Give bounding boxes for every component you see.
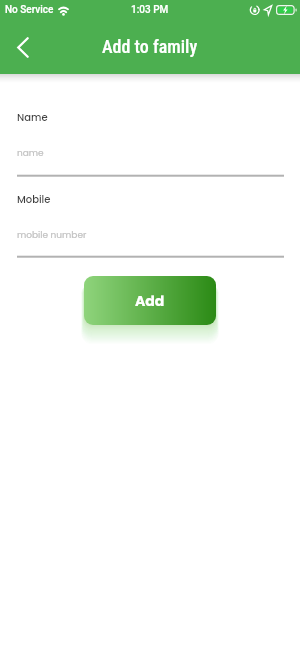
button[interactable]: Add (84, 276, 216, 325)
staticText: Add (135, 291, 165, 311)
staticText: 1:03 PM (131, 4, 169, 16)
button[interactable]: Back (5, 29, 41, 65)
staticText: mobile number (17, 229, 87, 242)
staticText: Name (17, 110, 48, 124)
staticText: Add to family (102, 36, 198, 57)
staticText: name (17, 147, 44, 160)
staticText: Mobile (17, 192, 51, 206)
staticText: No Service (5, 4, 54, 16)
